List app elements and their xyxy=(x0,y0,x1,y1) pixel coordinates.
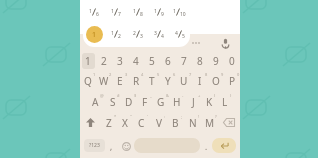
button[interactable]: 2 xyxy=(96,51,112,70)
button[interactable]: 9 xyxy=(208,51,224,70)
button[interactable]: More options xyxy=(188,35,204,51)
button[interactable]: 1 xyxy=(83,1,105,23)
button[interactable]: I xyxy=(192,70,208,91)
staticText: F xyxy=(142,95,148,109)
staticText: 6 xyxy=(173,72,176,77)
button[interactable]: 1 xyxy=(86,26,103,43)
button[interactable]: 1 xyxy=(105,23,127,45)
button[interactable]: M xyxy=(201,112,218,133)
staticText: + xyxy=(198,93,201,98)
staticText: 2 xyxy=(133,30,136,37)
button[interactable]: B xyxy=(167,112,184,133)
staticText: 8 xyxy=(140,11,143,18)
button[interactable]: J xyxy=(185,91,201,112)
button[interactable]: Space xyxy=(134,138,200,153)
staticText: 4 xyxy=(175,30,178,37)
staticText: 3 xyxy=(154,30,157,37)
staticText: $ xyxy=(134,93,137,98)
staticText: 7 xyxy=(189,72,192,77)
staticText: 1 xyxy=(85,54,91,68)
button[interactable]: A xyxy=(87,91,104,112)
button[interactable]: 1 xyxy=(127,1,148,23)
staticText: 9 xyxy=(221,72,224,77)
staticText: A xyxy=(92,95,99,109)
staticText: N xyxy=(189,116,197,130)
button[interactable]: 2 xyxy=(127,23,148,45)
staticText: ?123 xyxy=(89,142,100,149)
button[interactable]: Comma xyxy=(105,138,118,154)
staticText: 3 xyxy=(140,33,143,40)
staticText: , xyxy=(110,141,113,152)
staticText: 6 xyxy=(165,54,171,68)
button[interactable]: Enter xyxy=(212,138,236,153)
staticText: 1 xyxy=(92,30,97,40)
button[interactable]: Voice input xyxy=(217,35,233,51)
button[interactable]: L xyxy=(217,91,233,112)
staticText: 3 xyxy=(125,72,128,77)
button[interactable]: Shift xyxy=(80,112,101,133)
staticText: S xyxy=(110,95,116,109)
button[interactable]: T xyxy=(144,70,160,91)
staticText: 1 xyxy=(173,8,176,15)
staticText: O xyxy=(212,74,220,88)
staticText: @ xyxy=(100,93,104,98)
button[interactable]: S xyxy=(104,91,121,112)
button[interactable]: 4 xyxy=(128,51,144,70)
button[interactable]: Period xyxy=(200,138,212,154)
staticText: 1 xyxy=(111,30,114,37)
button[interactable]: 4 xyxy=(169,23,190,45)
staticText: 6 xyxy=(96,11,99,18)
button[interactable]: R xyxy=(128,70,144,91)
button[interactable]: 8 xyxy=(192,51,208,70)
button[interactable]: 1 xyxy=(169,1,190,23)
staticText: 1 xyxy=(111,8,114,15)
button[interactable]: Emoji xyxy=(118,138,134,154)
button[interactable]: 1 xyxy=(80,51,96,70)
button[interactable]: O xyxy=(208,70,224,91)
button[interactable]: Z xyxy=(101,112,117,133)
button[interactable]: 5 xyxy=(144,51,160,70)
button[interactable]: W xyxy=(96,70,112,91)
staticText: P xyxy=(229,74,236,88)
button[interactable]: H xyxy=(169,91,185,112)
staticText: 1 xyxy=(93,72,96,77)
staticText: 7 xyxy=(181,54,187,68)
button[interactable]: E xyxy=(112,70,128,91)
staticText: T xyxy=(149,74,155,88)
staticText: 3 xyxy=(117,54,123,68)
staticText: M xyxy=(205,116,215,130)
button[interactable]: K xyxy=(201,91,217,112)
staticText: 9 xyxy=(213,54,219,68)
button[interactable]: C xyxy=(133,112,150,133)
button[interactable]: N xyxy=(184,112,201,133)
staticText: - xyxy=(182,93,184,98)
button[interactable]: 7 xyxy=(176,51,192,70)
button[interactable]: P xyxy=(224,70,240,91)
button[interactable]: 0 xyxy=(224,51,240,70)
button[interactable]: 1 xyxy=(105,1,127,23)
staticText: ; xyxy=(181,114,183,119)
staticText: ' xyxy=(147,114,148,119)
button[interactable]: 1 xyxy=(148,1,169,23)
staticText: I xyxy=(198,74,202,88)
staticText: E xyxy=(117,74,123,88)
button[interactable]: V xyxy=(150,112,167,133)
staticText: 1 xyxy=(133,8,136,15)
button[interactable]: ?123 xyxy=(84,139,105,152)
button[interactable]: 6 xyxy=(160,51,176,70)
button[interactable]: 3 xyxy=(112,51,128,70)
button[interactable]: D xyxy=(121,91,137,112)
staticText: ( xyxy=(214,93,216,98)
button[interactable]: Q xyxy=(80,70,96,91)
button[interactable]: U xyxy=(176,70,192,91)
staticText: V xyxy=(156,116,162,130)
staticText: 5 xyxy=(157,72,160,77)
button[interactable]: Y xyxy=(160,70,176,91)
button[interactable]: 3 xyxy=(148,23,169,45)
staticText: Y xyxy=(165,74,171,88)
staticText: 7 xyxy=(118,11,121,18)
button[interactable]: G xyxy=(153,91,169,112)
button[interactable]: F xyxy=(137,91,153,112)
button[interactable]: Backspace xyxy=(218,112,240,133)
button[interactable]: X xyxy=(117,112,133,133)
